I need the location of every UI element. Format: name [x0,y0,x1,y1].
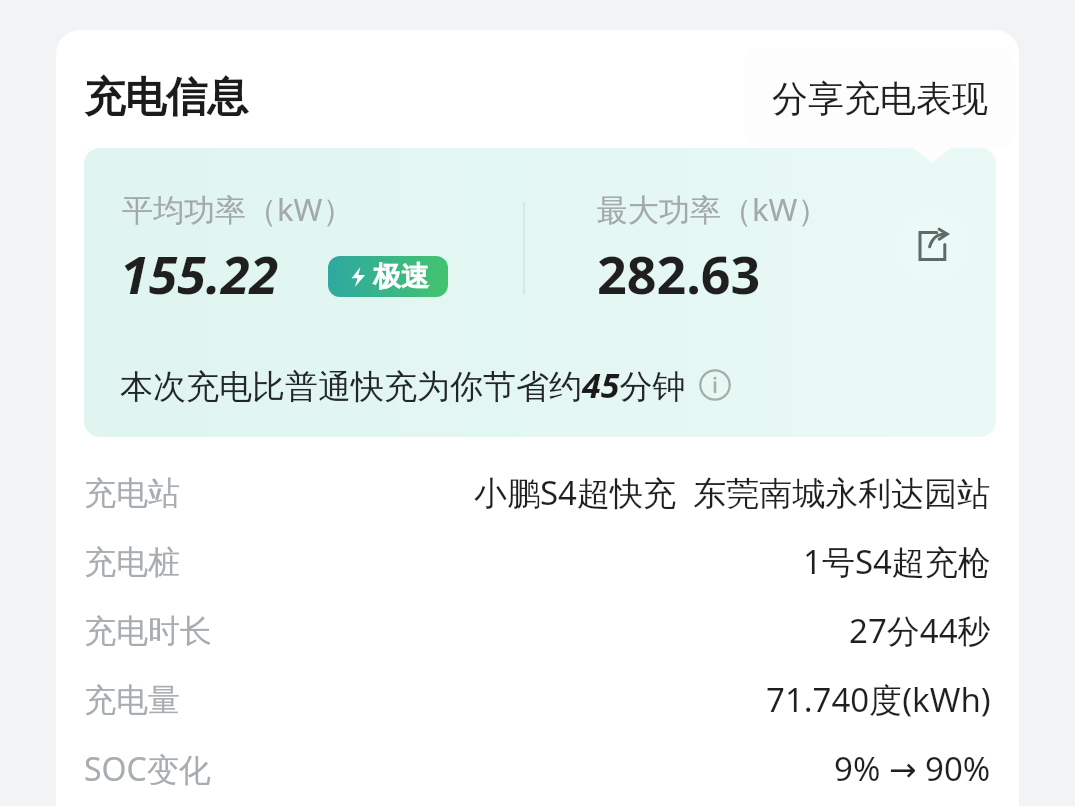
staticText: 充电站 [84,473,180,513]
staticText: 平均功率（kW） [122,188,354,230]
staticText: 充电量 [84,680,180,720]
staticText: 9% → 90% [834,746,991,791]
staticText: 极速 [373,259,429,294]
staticText: 155.22 [120,238,279,309]
staticText: 充电时长 [84,611,212,651]
button[interactable]: 极速 [328,256,448,297]
button[interactable]: 充电站 [56,458,1019,527]
button[interactable]: 充电时长 [56,596,1019,665]
staticText: 小鹏S4超快充 东莞南城永利达园站 [474,470,991,515]
button[interactable]: 充电量 [56,665,1019,734]
staticText: 71.740度(kWh) [766,677,991,722]
staticText: 分享充电表现 [772,76,988,121]
staticText: 充电桩 [84,542,180,582]
staticText: 本次充电比普通快充为你节省约45分钟 [120,362,686,408]
staticText: SOC变化 [84,747,211,791]
button[interactable]: SOC变化 [56,734,1019,803]
button[interactable]: Share [896,210,968,282]
button[interactable]: 充电桩 [56,527,1019,596]
staticText: 282.63 [597,238,761,309]
staticText: 1号S4超充枪 [803,539,991,584]
staticText: 充电信息 [84,72,248,124]
button[interactable]: Info [698,368,732,402]
staticText: 最大功率（kW） [597,188,829,230]
staticText: 27分44秒 [849,608,991,653]
button[interactable]: 分享充电表现 [744,48,1015,148]
